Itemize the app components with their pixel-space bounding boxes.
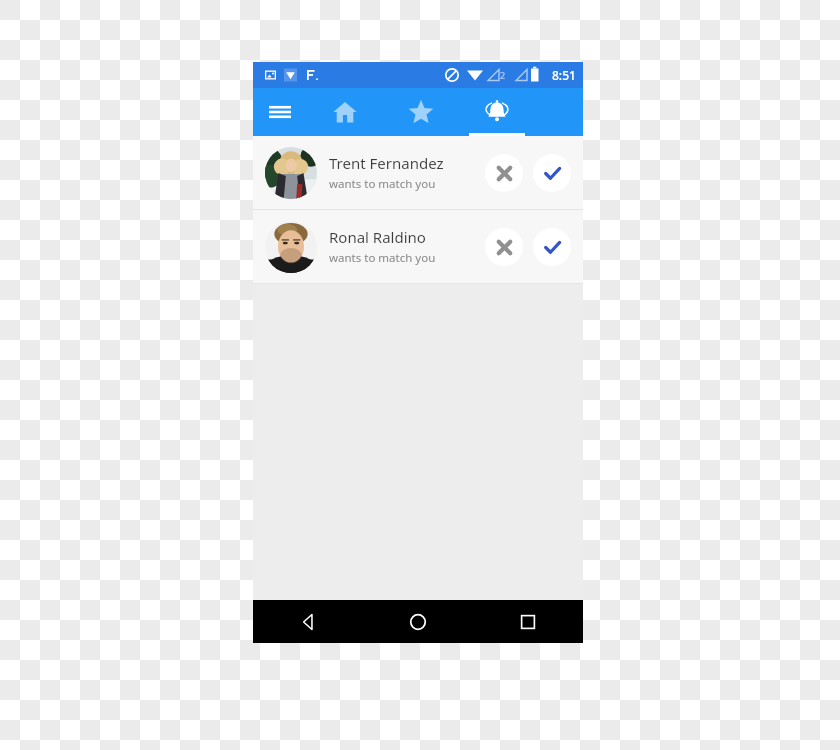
button[interactable]: Recents: [473, 600, 583, 643]
staticText: 1: [472, 69, 478, 81]
staticText: Trent Fernandez: [329, 153, 444, 173]
button[interactable]: Back: [253, 600, 363, 643]
button[interactable]: Trent Fernandez: [253, 136, 583, 209]
button[interactable]: Decline: [485, 154, 523, 192]
staticText: wants to match you: [329, 176, 436, 192]
button[interactable]: Decline: [485, 228, 523, 266]
staticText: Ronal Raldino: [329, 227, 426, 247]
staticText: 2: [500, 69, 506, 81]
button[interactable]: Ronal Raldino: [253, 210, 583, 283]
button[interactable]: Menu: [253, 88, 306, 136]
button[interactable]: Home: [306, 88, 383, 136]
staticText: 8:51: [552, 67, 576, 83]
button[interactable]: Accept: [533, 154, 571, 192]
button[interactable]: Favorites: [383, 88, 459, 136]
button[interactable]: Notifications: [459, 88, 535, 136]
button[interactable]: Home: [363, 600, 473, 643]
button[interactable]: Accept: [533, 228, 571, 266]
staticText: wants to match you: [329, 250, 436, 266]
